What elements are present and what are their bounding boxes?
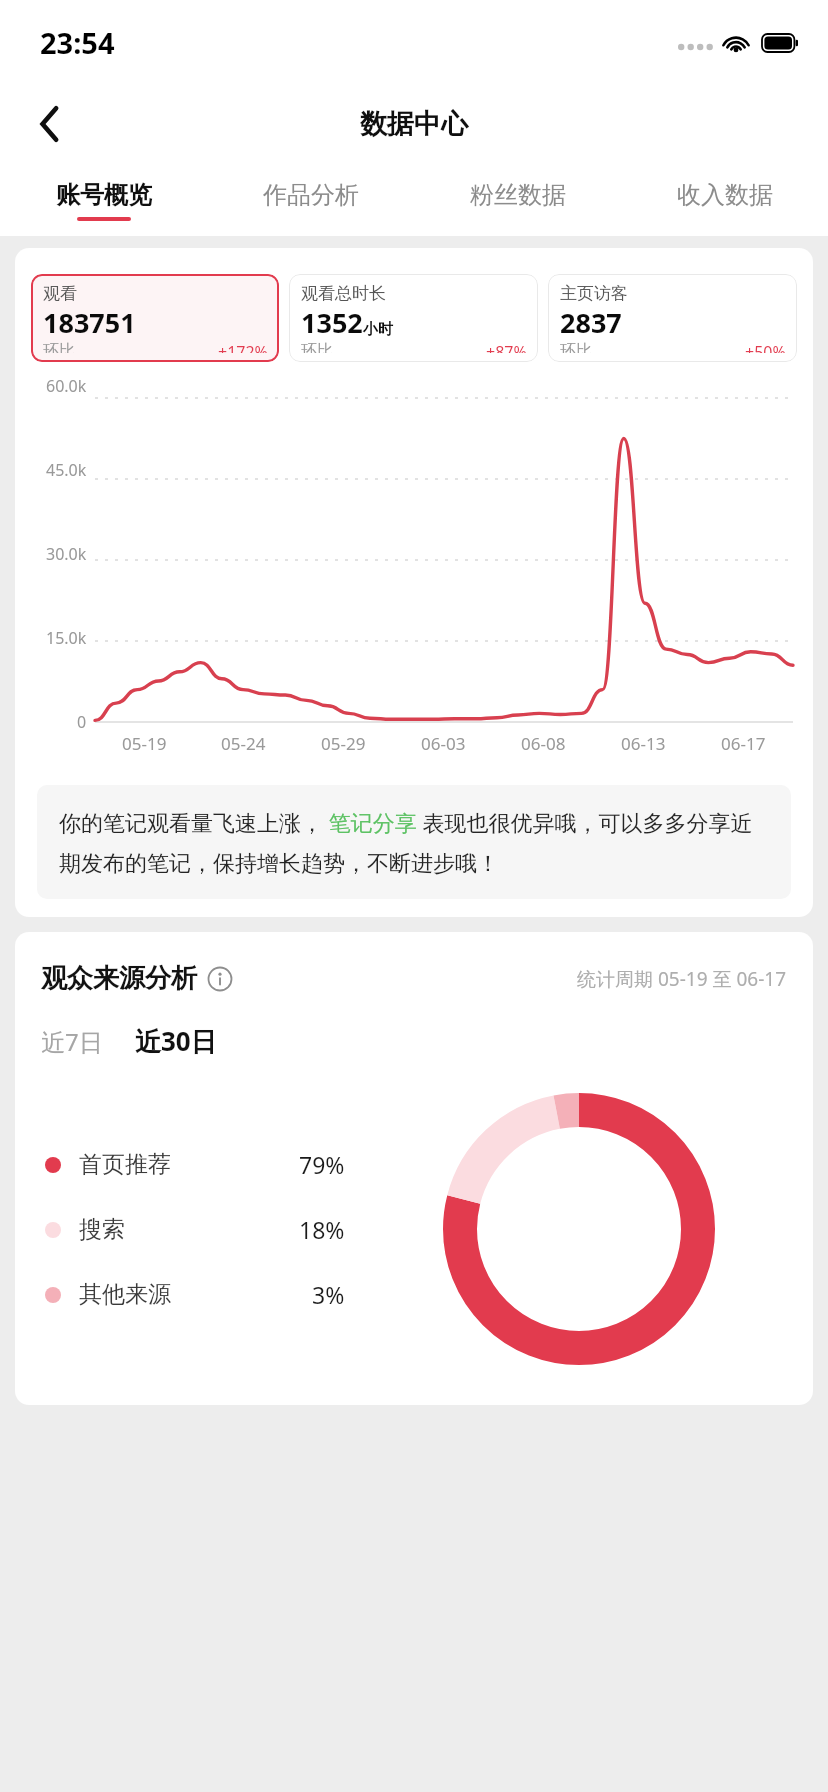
staticText: 账号概览 bbox=[56, 180, 152, 210]
staticText: 18% bbox=[299, 1214, 345, 1245]
staticText: 粉丝数据 bbox=[470, 180, 566, 210]
staticText: 79% bbox=[299, 1149, 345, 1180]
staticText: 你的笔记观看量飞速上涨， 笔记分享 表现也很优异哦，可以多多分享近期发布的笔记，… bbox=[59, 807, 769, 877]
staticText: 小时 bbox=[363, 320, 393, 339]
staticText: 15.0k bbox=[46, 627, 87, 649]
button[interactable]: 作品分析 bbox=[207, 164, 414, 236]
staticText: 主页访客 bbox=[560, 283, 628, 304]
staticText: 观看总时长 bbox=[301, 283, 386, 304]
staticText: 45.0k bbox=[46, 459, 87, 481]
button[interactable]: Info bbox=[207, 966, 233, 992]
staticText: +87% bbox=[486, 341, 527, 353]
staticText: 06-17 bbox=[721, 732, 766, 755]
button[interactable]: 搜索 bbox=[45, 1214, 345, 1245]
staticText: 其他来源 bbox=[79, 1280, 171, 1309]
staticText: 环比 bbox=[301, 341, 333, 353]
staticText: 06-08 bbox=[521, 732, 566, 755]
staticText: 收入数据 bbox=[677, 180, 773, 210]
button[interactable]: 近30日 bbox=[135, 1023, 217, 1059]
button[interactable]: 账号概览 bbox=[0, 164, 207, 236]
button[interactable]: 观看总时长 bbox=[289, 274, 538, 362]
staticText: 30.0k bbox=[46, 543, 87, 565]
button[interactable]: 主页访客 bbox=[548, 274, 797, 362]
staticText: 数据中心 bbox=[360, 107, 468, 141]
staticText: 环比 bbox=[560, 341, 592, 353]
staticText: 05-19 bbox=[122, 732, 167, 755]
staticText: 3% bbox=[312, 1279, 345, 1310]
staticText: 1352 bbox=[301, 304, 363, 341]
button[interactable]: Back bbox=[20, 94, 80, 154]
staticText: 观众来源分析 bbox=[41, 962, 197, 995]
button[interactable]: 近7日 bbox=[41, 1025, 107, 1058]
staticText: 0 bbox=[77, 711, 87, 733]
staticText: 环比 bbox=[43, 341, 75, 353]
staticText: 搜索 bbox=[79, 1215, 125, 1244]
staticText: 06-13 bbox=[621, 732, 666, 755]
button[interactable]: 其他来源 bbox=[45, 1279, 345, 1310]
button[interactable]: 收入数据 bbox=[621, 164, 828, 236]
staticText: 60.0k bbox=[46, 375, 87, 397]
staticText: +50% bbox=[745, 341, 786, 353]
staticText: 近7日 bbox=[41, 1025, 103, 1058]
staticText: 05-24 bbox=[221, 732, 266, 755]
button[interactable]: 观看 bbox=[31, 274, 279, 362]
staticText: 作品分析 bbox=[263, 180, 359, 210]
staticText: 观看 bbox=[43, 283, 77, 304]
staticText: 近30日 bbox=[135, 1023, 217, 1059]
staticText: 首页推荐 bbox=[79, 1150, 171, 1179]
staticText: 06-03 bbox=[421, 732, 466, 755]
button[interactable]: 首页推荐 bbox=[45, 1149, 345, 1180]
button[interactable]: 粉丝数据 bbox=[414, 164, 621, 236]
staticText: 23:54 bbox=[40, 23, 115, 62]
staticText: 统计周期 05-19 至 06-17 bbox=[577, 966, 787, 992]
staticText: +172% bbox=[218, 341, 268, 353]
staticText: 05-29 bbox=[321, 732, 366, 755]
staticText: 2837 bbox=[560, 304, 622, 341]
staticText: 183751 bbox=[43, 304, 136, 341]
